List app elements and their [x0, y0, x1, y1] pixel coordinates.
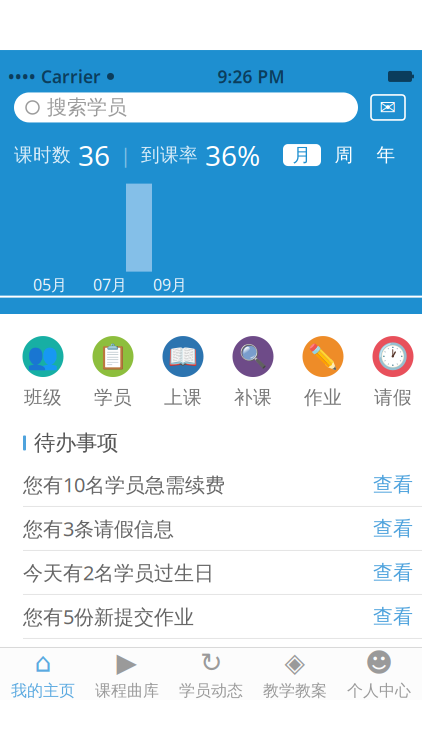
button[interactable]: ↻ [169, 649, 253, 699]
button[interactable]: ⌂ [1, 649, 85, 699]
staticText: 周 [334, 144, 353, 166]
button[interactable]: 消息 [368, 92, 408, 122]
staticText: 05月 [33, 274, 67, 295]
button[interactable]: 您有5份新提交作业 [7, 595, 422, 638]
staticText: ⌂ [34, 647, 51, 678]
staticText: 🕐 [377, 342, 409, 371]
staticText: ✉ [379, 96, 396, 119]
button[interactable]: 🕐 [362, 336, 422, 409]
staticText: ✏️ [308, 343, 338, 370]
staticText: 👥 [27, 342, 59, 371]
staticText: 查看 [373, 560, 413, 585]
staticText: 36% [198, 136, 260, 174]
staticText: 个人中心 [347, 681, 411, 700]
staticText: 07月 [93, 274, 127, 295]
staticText: 📋 [98, 343, 128, 370]
staticText: 学员动态 [179, 681, 243, 700]
staticText: 我的主页 [11, 681, 75, 700]
staticText: 月 [292, 144, 311, 166]
staticText: 学员 [94, 386, 132, 409]
staticText: 您有5份新提交作业 [23, 603, 194, 630]
staticText: 搜索学员 [47, 95, 127, 120]
staticText: 查看 [373, 604, 413, 629]
staticText: 到课率 [141, 144, 198, 166]
button[interactable]: 📖 [152, 336, 214, 409]
staticText: ▶ [116, 647, 137, 678]
staticText: ◈ [284, 647, 305, 678]
button[interactable]: 月 [283, 144, 321, 166]
staticText: 09月 [153, 274, 187, 295]
staticText: 查看 [373, 472, 413, 497]
button[interactable]: 今天有2名学员过生日 [7, 551, 422, 594]
staticText: ☻ [365, 647, 393, 678]
staticText: 课程曲库 [95, 681, 159, 700]
button[interactable]: ✏️ [292, 336, 354, 409]
staticText: 年 [376, 144, 395, 166]
staticText: 教学教案 [263, 681, 327, 700]
staticText: ↻ [200, 647, 222, 678]
button[interactable]: ▶ [85, 649, 169, 699]
staticText: •••• Carrier [8, 65, 101, 88]
button[interactable]: 👥 [12, 336, 74, 409]
button[interactable]: 📋 [82, 336, 144, 409]
staticText: 补课 [234, 386, 272, 409]
button[interactable]: 您有10名学员急需续费 [7, 463, 422, 506]
staticText: 待办事项 [34, 430, 118, 456]
staticText: 9:26 PM [217, 65, 284, 88]
button[interactable]: 周 [325, 144, 363, 166]
staticText: 查看 [373, 516, 413, 541]
button[interactable]: 🔍 [222, 336, 284, 409]
staticText: 您有3条请假信息 [23, 515, 174, 542]
button[interactable]: ◈ [253, 649, 337, 699]
staticText: 请假 [374, 386, 412, 409]
staticText: 🔍 [239, 344, 267, 369]
staticText: 班级 [24, 386, 62, 409]
staticText: 课时数 [14, 144, 71, 166]
button[interactable]: ☻ [337, 649, 421, 699]
staticText: 📖 [168, 343, 198, 370]
staticText: 您有10名学员急需续费 [23, 471, 225, 498]
staticText: 上课 [164, 386, 202, 409]
staticText: 36 [71, 136, 110, 174]
staticText: | [110, 142, 141, 168]
staticText: 作业 [304, 386, 342, 409]
button[interactable]: 您有3条请假信息 [7, 507, 422, 550]
staticText: 今天有2名学员过生日 [23, 559, 214, 586]
button[interactable]: 搜索学员 [14, 92, 358, 122]
button[interactable]: 年 [367, 144, 405, 166]
